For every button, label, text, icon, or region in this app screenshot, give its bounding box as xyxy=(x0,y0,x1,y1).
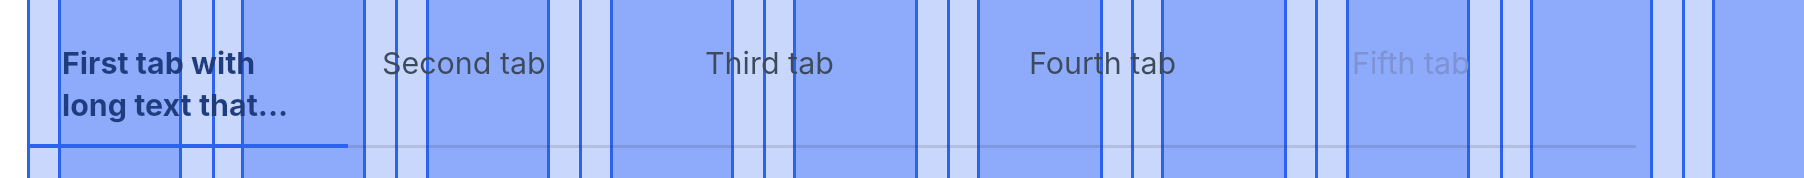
staticText: Fourth tab xyxy=(1029,45,1177,82)
button[interactable]: Second tab xyxy=(382,45,782,82)
button[interactable]: Fourth tab xyxy=(1029,45,1429,82)
button[interactable]: Fifth tab xyxy=(1352,45,1752,82)
button[interactable]: Third tab xyxy=(705,45,1105,82)
staticText: Second tab xyxy=(382,45,546,82)
staticText: Third tab xyxy=(705,45,834,82)
staticText: First tab with long text that... xyxy=(62,45,322,124)
button[interactable]: First tab with long text that... xyxy=(62,45,322,124)
staticText: Fifth tab xyxy=(1352,45,1470,82)
